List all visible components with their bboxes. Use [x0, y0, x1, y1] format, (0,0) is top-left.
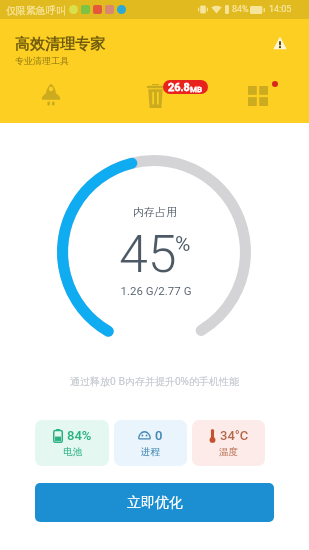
staticText: 电池: [63, 446, 82, 458]
button[interactable]: 34°C: [192, 420, 265, 466]
staticText: 专业清理工具: [15, 55, 69, 66]
staticText: 高效清理专家: [15, 35, 105, 54]
staticText: 0: [155, 428, 163, 443]
staticText: 仅限紧急呼叫: [6, 4, 66, 17]
staticText: 通过释放0 B内存并提升0%的手机性能: [0, 374, 309, 388]
staticText: 45: [119, 224, 177, 285]
staticText: MB: [190, 85, 203, 94]
staticText: %: [175, 232, 191, 257]
button[interactable]: 立即优化: [35, 483, 274, 522]
staticText: 1.26 G/2.77 G: [59, 284, 253, 297]
button[interactable]: Boost: [35, 79, 67, 111]
staticText: 84%: [67, 428, 92, 443]
staticText: 立即优化: [127, 494, 183, 512]
staticText: 进程: [141, 446, 160, 458]
staticText: 26.8: [168, 81, 190, 94]
staticText: 34°C: [220, 428, 249, 443]
button[interactable]: Clean junk: [139, 80, 171, 112]
button[interactable]: 84%: [35, 420, 109, 466]
staticText: 84%: [232, 4, 249, 15]
staticText: 14:05: [269, 4, 292, 15]
button[interactable]: Warning: [268, 31, 292, 55]
button[interactable]: 0: [114, 420, 187, 466]
staticText: 内存占用: [58, 205, 252, 219]
button[interactable]: More tools: [242, 80, 274, 112]
staticText: 温度: [219, 446, 238, 458]
